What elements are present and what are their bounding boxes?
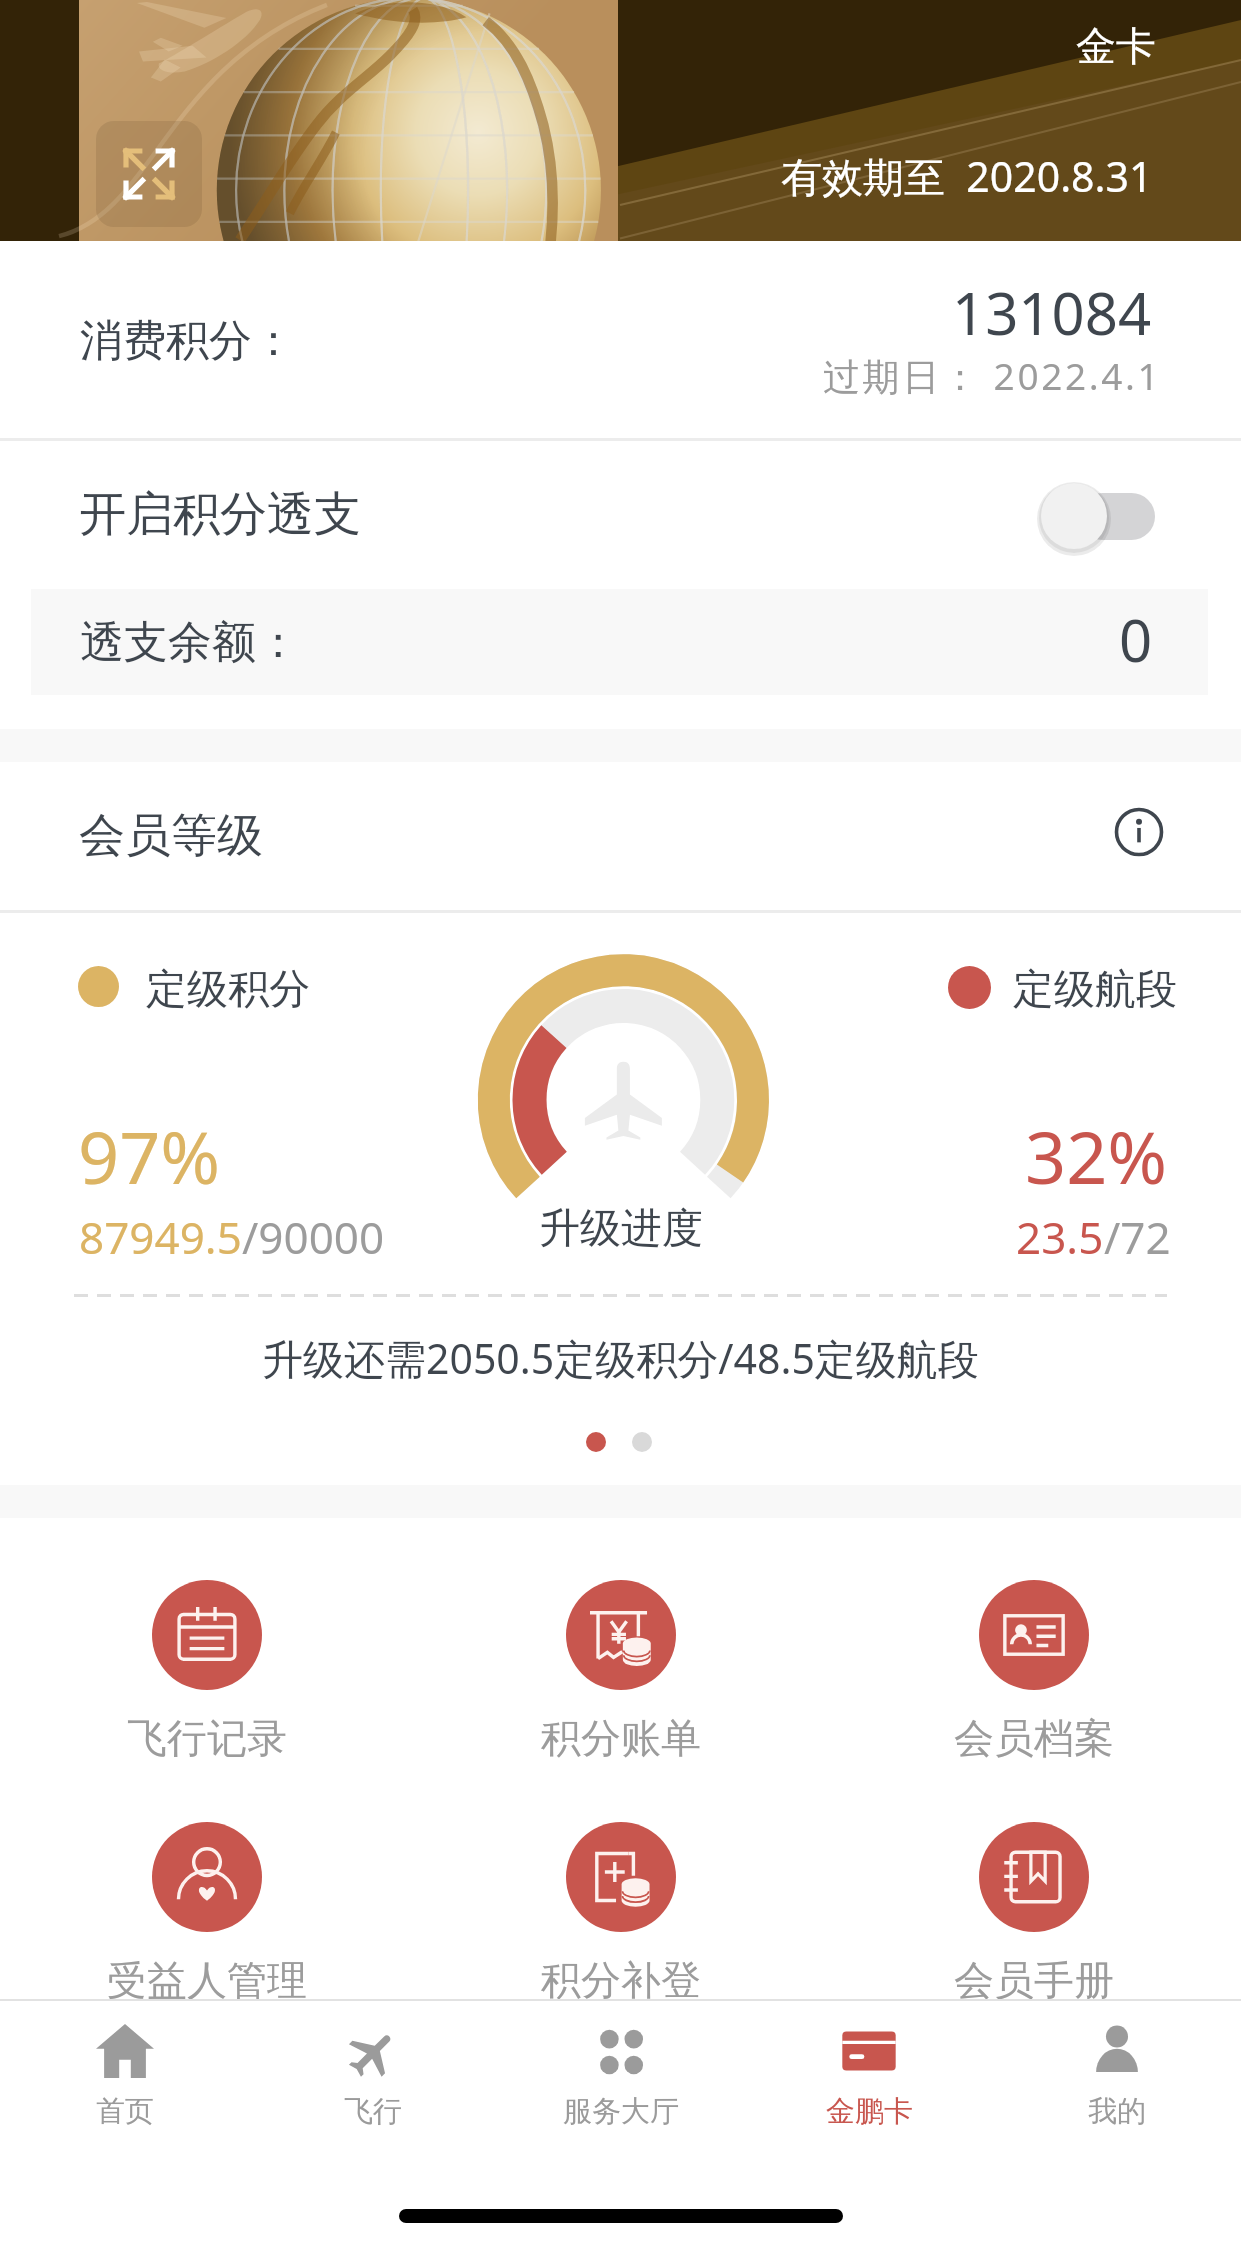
button[interactable]: 受益人管理	[0, 1797, 414, 2027]
button[interactable]: 会员手册	[827, 1797, 1241, 2027]
button[interactable]: 飞行记录	[0, 1555, 414, 1785]
staticText: 定级航段	[1013, 964, 1177, 1016]
button[interactable]: 金鹏卡	[745, 2001, 993, 2169]
staticText: /90000	[242, 1207, 385, 1267]
staticText: 金卡	[1076, 21, 1156, 71]
button[interactable]: 会员等级说明	[1113, 806, 1165, 858]
staticText: 定级积分	[146, 964, 310, 1016]
button[interactable]: 首页	[0, 2001, 249, 2169]
staticText: 有效期至 2020.8.31	[781, 148, 1153, 204]
staticText: 受益人管理	[107, 1955, 307, 2005]
button[interactable]: 飞行	[249, 2001, 497, 2169]
staticText: 服务大厅	[563, 2093, 679, 2130]
staticText: 升级还需2050.5定级积分/48.5定级航段	[262, 1330, 979, 1386]
staticText: 97%	[78, 1107, 221, 1205]
button[interactable]: 积分账单	[414, 1555, 828, 1785]
button[interactable]: 积分补登	[414, 1797, 828, 2027]
button[interactable]: 会员档案	[827, 1555, 1241, 1785]
staticText: 会员手册	[954, 1955, 1114, 2005]
staticText: 积分补登	[541, 1955, 701, 2005]
staticText: 飞行记录	[127, 1713, 287, 1763]
staticText: 23.5	[1016, 1207, 1104, 1267]
button[interactable]: 放大卡片	[96, 121, 202, 227]
staticText: 首页	[96, 2093, 154, 2130]
staticText: 消费积分：	[80, 314, 295, 368]
staticText: 我的	[1088, 2093, 1146, 2130]
staticText: 飞行	[344, 2093, 402, 2130]
staticText: 87949.5	[79, 1207, 242, 1267]
staticText: 金鹏卡	[826, 2093, 913, 2130]
staticText: 开启积分透支	[79, 485, 361, 544]
staticText: /72	[1104, 1207, 1171, 1267]
staticText: 积分账单	[541, 1713, 701, 1763]
staticText: 会员档案	[954, 1713, 1114, 1763]
button[interactable]: 开启积分透支	[1035, 480, 1165, 552]
staticText: 升级进度	[539, 1203, 703, 1255]
button[interactable]: 服务大厅	[497, 2001, 745, 2169]
staticText: 过期日： 2022.4.1	[823, 350, 1162, 401]
staticText: 32%	[1025, 1107, 1168, 1205]
staticText: 透支余额：	[80, 615, 300, 670]
staticText: 0	[1119, 600, 1153, 679]
button[interactable]: 我的	[993, 2001, 1241, 2169]
staticText: 131084	[952, 273, 1152, 352]
staticText: 会员等级	[79, 807, 263, 865]
